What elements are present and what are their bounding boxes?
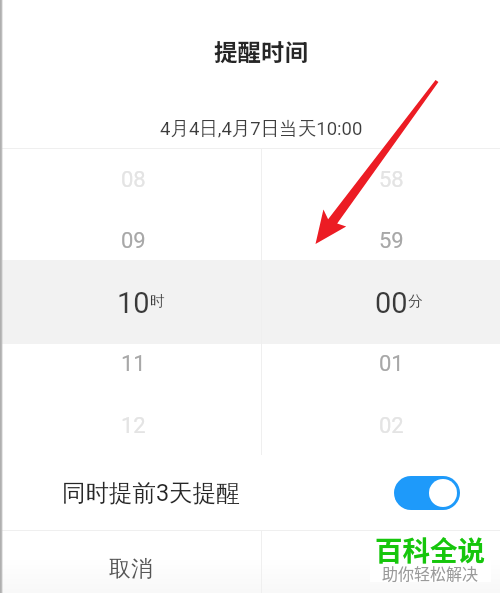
button[interactable]: 58 (261, 152, 500, 208)
button[interactable]: 59 (261, 213, 500, 269)
staticText: 08 (121, 167, 146, 193)
button[interactable]: 01 (261, 336, 500, 392)
button[interactable] (262, 531, 500, 593)
button[interactable]: 11 (3, 336, 264, 392)
staticText: 00 (375, 286, 408, 320)
staticText: 分 (408, 292, 423, 310)
button[interactable]: 09 (3, 213, 264, 269)
staticText: 09 (121, 228, 146, 254)
staticText: 取消 (109, 555, 153, 583)
staticText: 58 (379, 167, 404, 193)
staticText: 提醒时间 (214, 34, 308, 68)
other: Remind 3 days early toggle (394, 476, 460, 510)
staticText: 助你轻松解决 (382, 561, 479, 584)
staticText: 10 (117, 286, 150, 320)
staticText: 59 (379, 228, 404, 254)
button[interactable]: 10 (3, 275, 264, 331)
button[interactable]: 同时提前3天提醒 (0, 455, 500, 530)
staticText: 02 (379, 413, 404, 439)
staticText: 百科全说 (375, 529, 485, 569)
staticText: 同时提前3天提醒 (62, 478, 240, 508)
staticText: 11 (121, 351, 146, 377)
staticText: 01 (379, 351, 404, 377)
button[interactable]: 取消 (0, 531, 261, 593)
staticText: 4月4日,4月7日当天10:00 (160, 117, 363, 140)
staticText: 时 (150, 292, 165, 310)
staticText: 12 (121, 413, 146, 439)
button[interactable]: 00 (261, 275, 500, 331)
